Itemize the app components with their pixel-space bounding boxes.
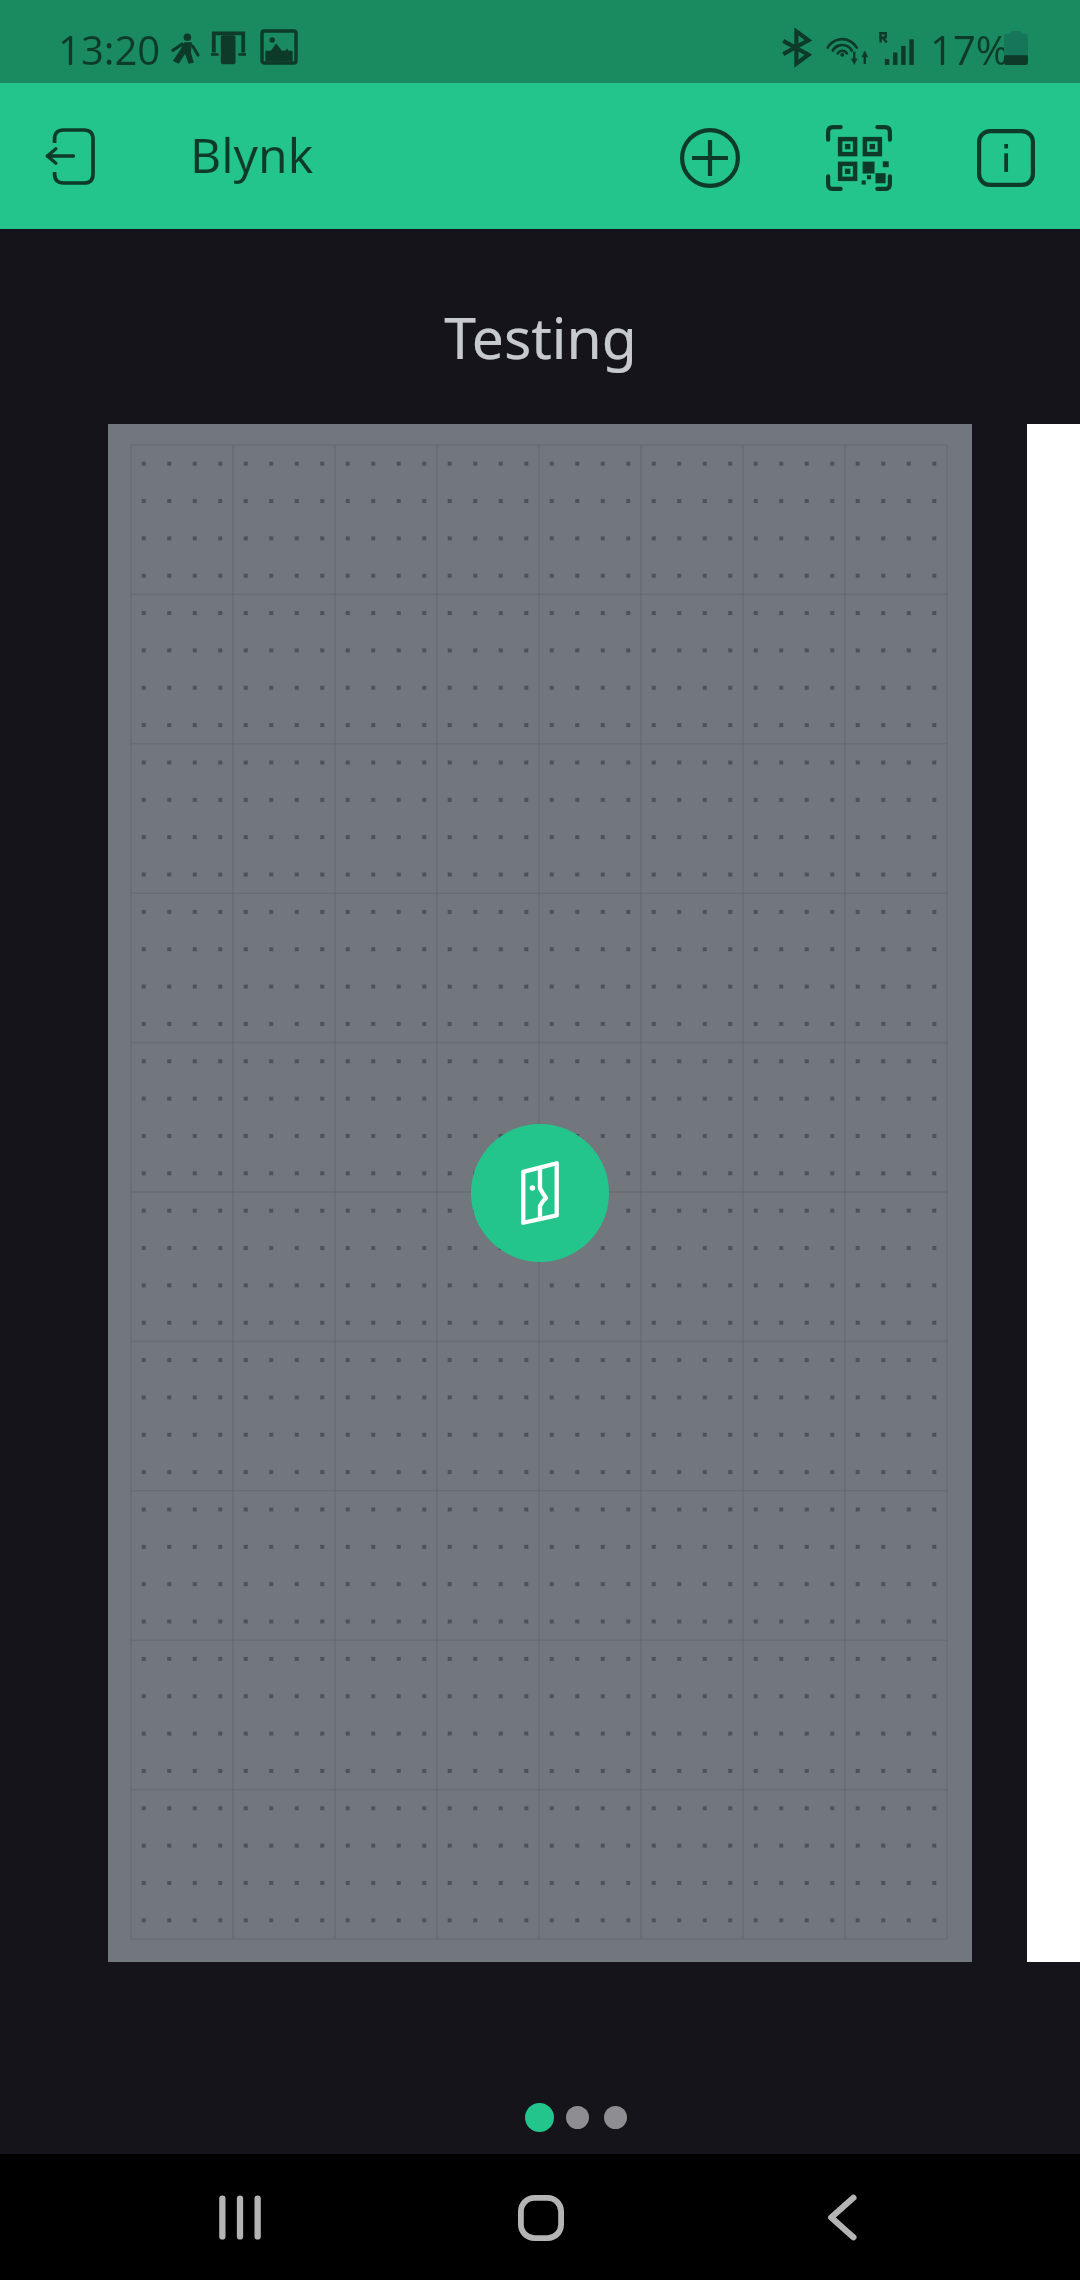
- button[interactable]: Scan QR code: [804, 103, 914, 213]
- button[interactable]: Back: [782, 2155, 902, 2280]
- button[interactable]: Door widget: [471, 1124, 609, 1262]
- button[interactable]: Info: [951, 103, 1061, 213]
- staticText: 17%: [930, 22, 1009, 76]
- button[interactable]: Add: [655, 103, 765, 213]
- button[interactable]: Log out: [11, 96, 131, 216]
- button[interactable]: Page 1: [525, 2103, 554, 2132]
- staticText: Blynk: [190, 122, 314, 187]
- staticText: Testing: [444, 298, 637, 376]
- staticText: 13:20: [58, 22, 161, 76]
- button[interactable]: Recents: [180, 2155, 300, 2280]
- button[interactable]: Page 3: [604, 2106, 627, 2129]
- button[interactable]: Page 2: [566, 2106, 589, 2129]
- button[interactable]: Home: [481, 2155, 601, 2280]
